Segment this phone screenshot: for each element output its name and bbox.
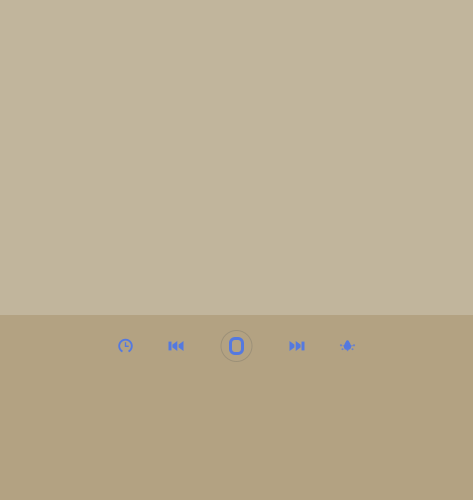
button[interactable]: Next [272,324,322,368]
button[interactable]: Play or pause [201,324,272,368]
button[interactable]: Audio output [322,324,373,368]
button[interactable]: Playback speed [100,324,151,368]
button[interactable]: Previous [151,324,201,368]
